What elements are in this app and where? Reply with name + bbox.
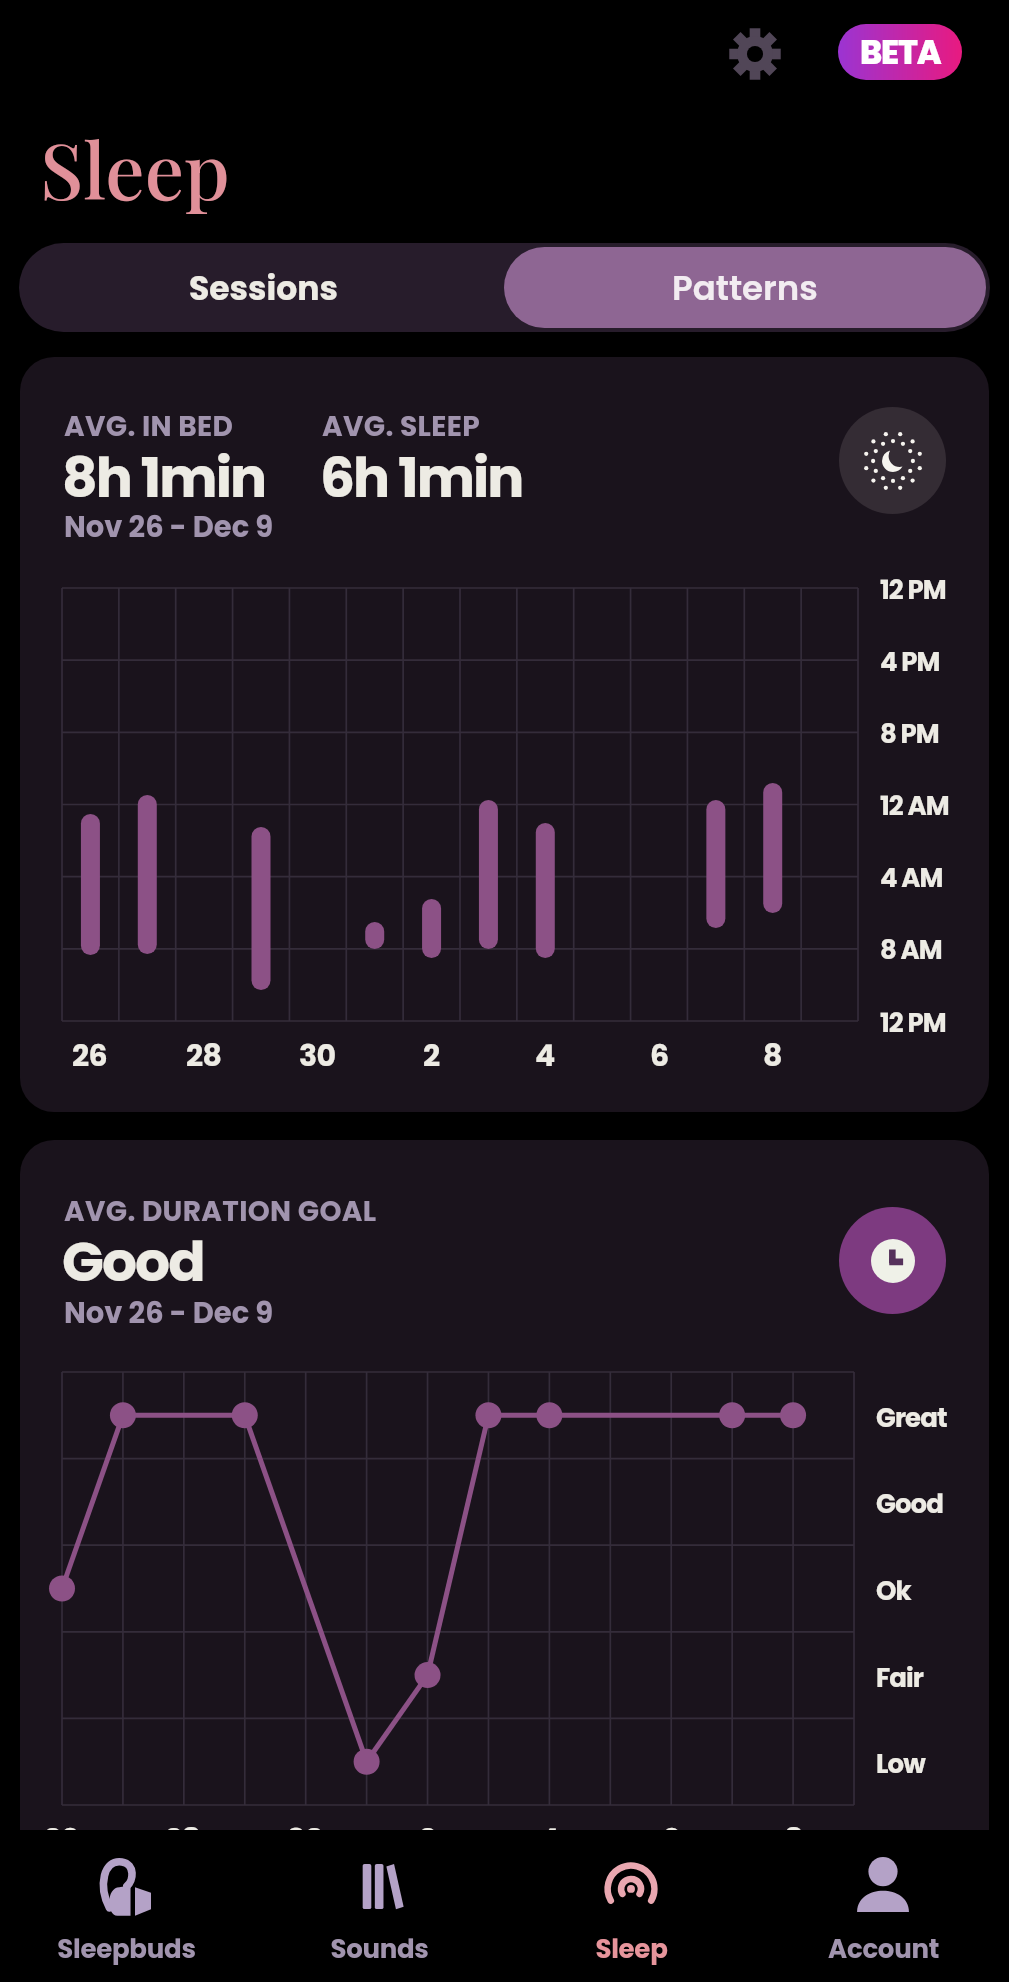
staticText: Sleep <box>40 116 230 220</box>
staticText: 4 <box>539 1819 559 1830</box>
staticText: 6h 1min <box>320 439 523 499</box>
button[interactable]: Sounds <box>253 1830 505 1982</box>
button[interactable]: Sleepbuds <box>0 1830 253 1982</box>
staticText: 8 AM <box>880 932 942 968</box>
staticText: Sounds <box>330 1931 429 1967</box>
staticText: AVG. IN BED <box>64 407 234 446</box>
staticText: Sleep <box>595 1931 668 1967</box>
staticText: 26 <box>44 1819 80 1830</box>
staticText: 4 AM <box>880 860 943 896</box>
staticText: Nov 26 - Dec 9 <box>64 507 274 548</box>
staticText: 8h 1min <box>62 439 266 499</box>
staticText: 12 AM <box>880 788 949 824</box>
button[interactable]: Sleep <box>505 1830 757 1982</box>
staticText: 6 <box>662 1819 681 1830</box>
button[interactable]: Duration goal info <box>839 1207 946 1314</box>
staticText: 6 <box>650 1035 669 1077</box>
staticText: Good <box>62 1223 204 1283</box>
staticText: Fair <box>876 1660 924 1696</box>
staticText: 30 <box>299 1035 336 1077</box>
staticText: 26 <box>72 1035 108 1077</box>
staticText: 2 <box>423 1035 440 1077</box>
staticText: 28 <box>186 1035 222 1077</box>
staticText: 12 PM <box>880 572 946 608</box>
staticText: 8 <box>763 1035 782 1077</box>
staticText: Nov 26 - Dec 9 <box>64 1293 274 1334</box>
staticText: BETA <box>860 29 941 75</box>
button[interactable]: Patterns <box>504 247 986 328</box>
staticText: Low <box>876 1746 925 1782</box>
button[interactable]: Sessions <box>23 247 504 328</box>
button[interactable]: Settings <box>721 20 788 87</box>
staticText: Patterns <box>672 264 818 312</box>
button[interactable]: Sleep info <box>839 407 946 514</box>
staticText: 2 <box>419 1819 436 1830</box>
staticText: AVG. SLEEP <box>322 407 480 446</box>
button[interactable]: BETA <box>838 24 962 80</box>
staticText: 30 <box>287 1819 324 1830</box>
staticText: 12 PM <box>880 1005 946 1041</box>
staticText: 8 PM <box>880 716 939 752</box>
button[interactable]: Account <box>757 1830 1009 1982</box>
staticText: Good <box>876 1486 943 1522</box>
staticText: 28 <box>165 1819 201 1830</box>
staticText: Sessions <box>189 265 338 311</box>
staticText: 8 <box>784 1819 803 1830</box>
staticText: AVG. DURATION GOAL <box>64 1192 377 1231</box>
staticText: Ok <box>876 1573 911 1609</box>
staticText: 4 <box>535 1035 555 1077</box>
staticText: Sleepbuds <box>57 1931 196 1967</box>
staticText: 4 PM <box>880 644 940 680</box>
staticText: Account <box>828 1931 939 1967</box>
staticText: Great <box>876 1400 947 1436</box>
